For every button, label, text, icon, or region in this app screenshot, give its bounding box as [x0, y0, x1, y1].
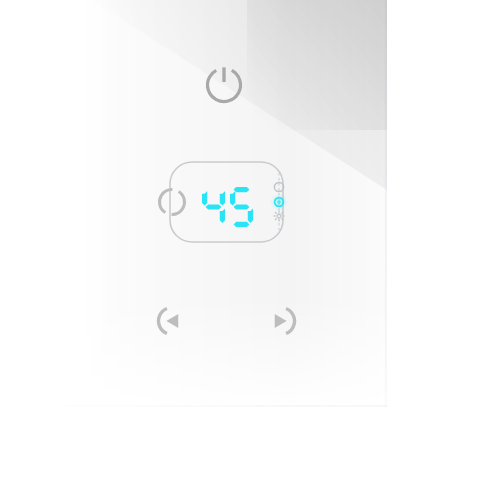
- button[interactable]: Power: [199, 60, 249, 110]
- button[interactable]: Next: [262, 301, 302, 341]
- button[interactable]: Previous: [151, 301, 191, 341]
